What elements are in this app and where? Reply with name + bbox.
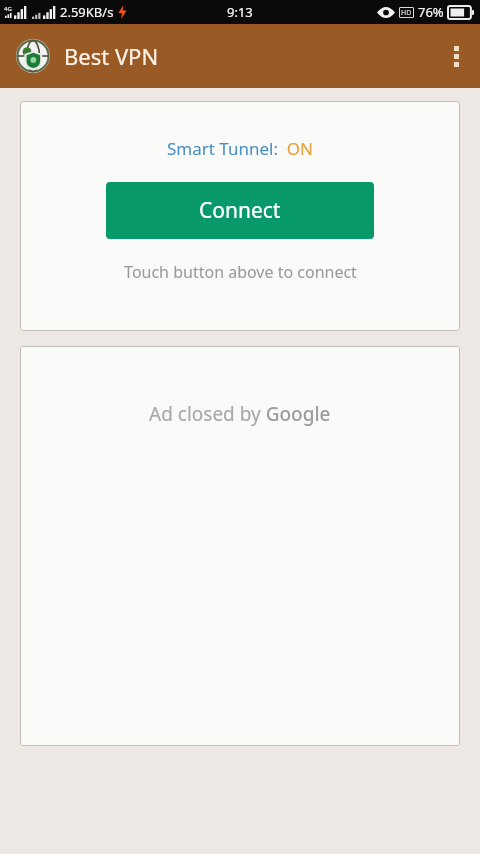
staticText: 76% bbox=[418, 3, 444, 21]
staticText: Connect bbox=[199, 196, 281, 225]
staticText: 9:13 bbox=[227, 3, 253, 21]
staticText: HD bbox=[401, 8, 412, 18]
button[interactable]: Connect bbox=[106, 182, 374, 239]
button[interactable]: More options bbox=[432, 32, 480, 80]
staticText: Best VPN bbox=[64, 41, 159, 71]
button[interactable]: Ad closed by Google bbox=[20, 346, 460, 746]
staticText: 4G bbox=[4, 5, 12, 13]
staticText: Ad closed by Google bbox=[149, 401, 331, 427]
staticText: Smart Tunnel: ON bbox=[167, 137, 314, 160]
staticText: Touch button above to connect bbox=[124, 261, 357, 283]
staticText: 2.59KB/s bbox=[60, 3, 114, 21]
